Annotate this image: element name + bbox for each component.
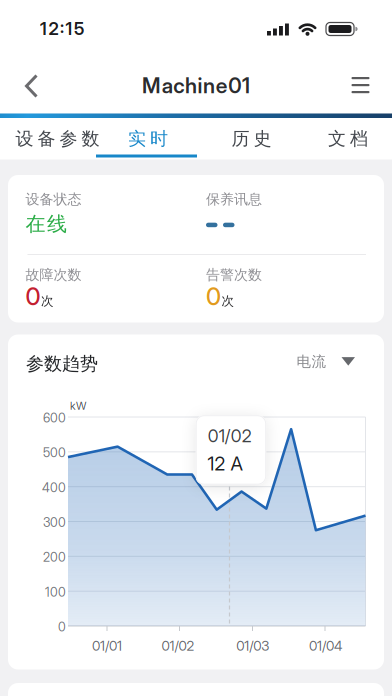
staticText: 01/04 bbox=[309, 637, 342, 654]
button[interactable]: Back bbox=[0, 71, 48, 101]
staticText: 历史 bbox=[231, 127, 271, 150]
staticText: 300 bbox=[43, 515, 66, 530]
staticText: 0 bbox=[58, 619, 66, 634]
staticText: Machine01 bbox=[142, 73, 250, 98]
staticText: 次 bbox=[221, 293, 234, 309]
staticText: 0 bbox=[25, 282, 40, 311]
button[interactable]: Menu bbox=[338, 70, 382, 100]
button[interactable]: 实时 bbox=[98, 118, 196, 159]
staticText: 01/03 bbox=[236, 637, 269, 654]
staticText: 100 bbox=[45, 585, 66, 600]
staticText: 次 bbox=[41, 293, 54, 309]
button[interactable]: 电流 bbox=[296, 352, 355, 371]
staticText: kW bbox=[70, 399, 86, 412]
staticText: 电流 bbox=[296, 352, 326, 371]
staticText: 告警次数 bbox=[206, 266, 262, 284]
button[interactable]: 历史 bbox=[196, 118, 294, 159]
staticText: 500 bbox=[43, 445, 66, 460]
staticText: 设备参数 bbox=[15, 127, 99, 150]
staticText: 设备状态 bbox=[25, 190, 81, 208]
staticText: 12:15 bbox=[40, 18, 84, 39]
staticText: 01/01 bbox=[92, 637, 122, 654]
staticText: 01/02 bbox=[161, 637, 194, 654]
staticText: 保养讯息 bbox=[206, 190, 262, 208]
staticText: 400 bbox=[42, 480, 66, 495]
staticText: 0 bbox=[206, 282, 221, 311]
staticText: 600 bbox=[43, 410, 66, 425]
staticText: 参数趋势 bbox=[26, 352, 98, 375]
staticText: 故障次数 bbox=[25, 266, 81, 284]
staticText: 200 bbox=[43, 550, 66, 565]
staticText: 12 A bbox=[207, 452, 242, 475]
button[interactable]: 设备参数 bbox=[0, 118, 98, 159]
staticText: 实时 bbox=[128, 127, 168, 150]
button[interactable]: 文档 bbox=[294, 118, 392, 159]
staticText: 在线 bbox=[25, 211, 67, 237]
staticText: 文档 bbox=[328, 127, 368, 150]
staticText: 01/02 bbox=[208, 425, 252, 446]
